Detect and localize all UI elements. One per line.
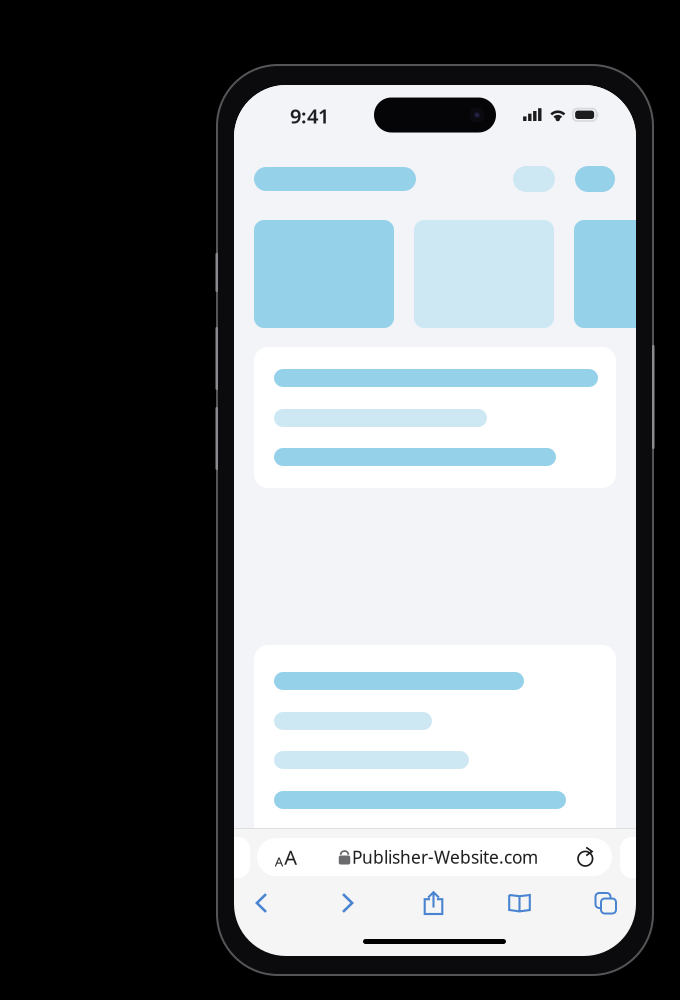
- staticText: A: [275, 853, 284, 870]
- button[interactable]: Forward: [319, 880, 375, 926]
- button[interactable]: Share: [405, 880, 461, 926]
- staticText: Publisher-Website.com: [352, 845, 538, 868]
- button[interactable]: A: [257, 838, 612, 876]
- button[interactable]: Tabs: [577, 880, 633, 926]
- button[interactable]: Bookmarks: [491, 880, 547, 926]
- staticText: 9:41: [290, 102, 329, 129]
- button[interactable]: Back: [233, 880, 289, 926]
- staticText: A: [284, 844, 297, 870]
